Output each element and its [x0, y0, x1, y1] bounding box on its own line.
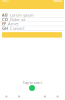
staticText: Radio: [53, 0, 62, 3]
staticText: CD: [2, 17, 8, 22]
staticText: GH: [2, 25, 8, 31]
staticText: EF: [2, 21, 6, 26]
staticText: AB: [2, 12, 8, 18]
staticText: Amet: [8, 21, 18, 26]
staticText: 9:41: [2, 0, 9, 3]
staticText: Consect: [10, 25, 24, 31]
staticText: Tap to start: [22, 80, 41, 85]
staticText: Dolor sit: [10, 17, 25, 22]
staticText: Lorem ipsum: [10, 12, 34, 18]
